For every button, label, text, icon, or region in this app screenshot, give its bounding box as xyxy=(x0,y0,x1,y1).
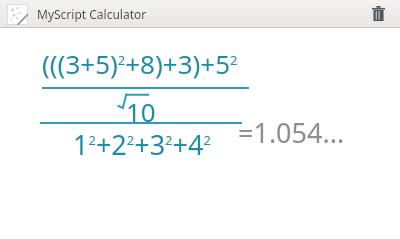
staticText: 12+22+32+42 xyxy=(73,126,211,163)
staticText: MyScript Calculator xyxy=(37,6,147,22)
button[interactable]: (((3+5)2+8)+3)+52 xyxy=(0,28,400,239)
staticText: 10 xyxy=(126,94,156,129)
staticText: =1.054... xyxy=(238,114,345,151)
button[interactable]: MyScript Calculator icon xyxy=(7,4,28,25)
staticText: (((3+5)2+8)+3)+52 xyxy=(42,46,238,81)
button[interactable]: Clear xyxy=(364,0,392,28)
